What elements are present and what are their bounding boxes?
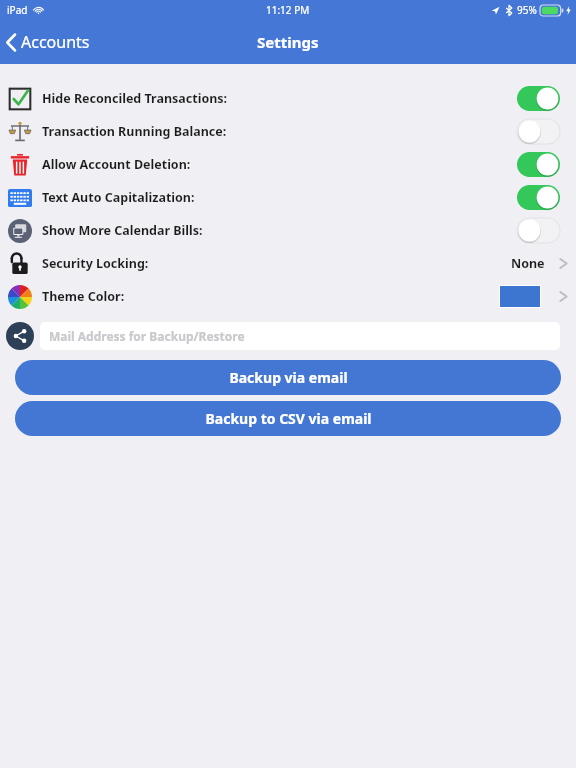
staticText: Settings [257, 32, 319, 52]
button[interactable]: Hide Reconciled Transactions: [0, 82, 576, 115]
button[interactable]: Share [6, 322, 34, 350]
button[interactable]: Allow Account Deletion: [0, 148, 576, 181]
button[interactable]: Backup to CSV via email [15, 401, 561, 436]
staticText: Accounts [21, 31, 90, 53]
staticText: 95% [517, 3, 537, 17]
staticText: Backup via email [229, 368, 348, 387]
button[interactable]: Theme Color: [0, 280, 576, 313]
staticText: Backup to CSV via email [205, 409, 372, 428]
button[interactable]: Off [517, 119, 560, 144]
staticText: Allow Account Deletion: [42, 156, 191, 173]
button[interactable]: On [517, 152, 560, 177]
staticText: Text Auto Capitalization: [42, 189, 195, 206]
button[interactable]: On [517, 185, 560, 210]
button[interactable]: Show More Calendar Bills: [0, 214, 576, 247]
button[interactable]: Transaction Running Balance: [0, 115, 576, 148]
button[interactable]: Backup via email [15, 360, 561, 395]
staticText: Mail Address for Backup/Restore [49, 328, 245, 344]
staticText: iPad [7, 3, 28, 17]
staticText: Security Locking: [42, 255, 149, 272]
staticText: Theme Color: [42, 288, 125, 305]
button[interactable]: On [517, 86, 560, 111]
button[interactable]: Off [517, 218, 560, 243]
button[interactable]: Mail Address for Backup/Restore [40, 322, 560, 350]
staticText: Hide Reconciled Transactions: [42, 90, 228, 107]
staticText: Show More Calendar Bills: [42, 222, 203, 239]
button[interactable]: Security Locking: [0, 247, 576, 280]
staticText: Transaction Running Balance: [42, 123, 227, 140]
button[interactable]: Accounts [6, 31, 90, 53]
button[interactable]: Text Auto Capitalization: [0, 181, 576, 214]
staticText: None [511, 255, 545, 272]
staticText: 11:12 PM [266, 3, 310, 17]
